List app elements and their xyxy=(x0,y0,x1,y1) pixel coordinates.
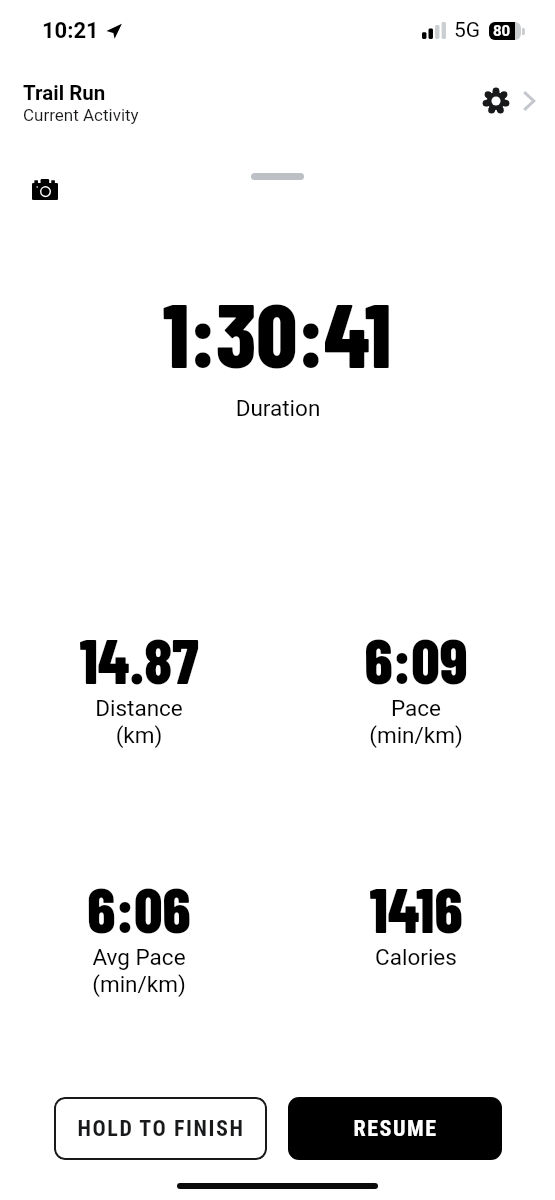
staticText: Trail Run xyxy=(23,81,106,105)
staticText: 6:06 xyxy=(0,870,399,945)
staticText: 1416 xyxy=(156,870,555,945)
button[interactable]: Settings xyxy=(474,79,518,123)
staticText: RESUME xyxy=(353,1116,438,1142)
staticText: Current Activity xyxy=(23,105,139,125)
staticText: 80 xyxy=(493,22,511,40)
staticText: Avg Pace xyxy=(0,944,399,970)
staticText: 6:09 xyxy=(156,621,555,696)
staticText: 14.87 xyxy=(0,621,399,696)
staticText: (min/km) xyxy=(156,722,555,748)
staticText: Distance xyxy=(0,695,399,721)
staticText: Duration xyxy=(18,395,538,421)
staticText: (km) xyxy=(0,722,399,748)
staticText: (min/km) xyxy=(0,971,399,997)
button[interactable]: HOLD TO FINISH xyxy=(54,1097,267,1160)
staticText: 1:30:41 xyxy=(17,278,537,386)
staticText: Calories xyxy=(156,944,555,970)
staticText: HOLD TO FINISH xyxy=(77,1116,245,1142)
button[interactable]: Camera xyxy=(24,172,66,207)
button[interactable]: RESUME xyxy=(288,1097,502,1160)
staticText: Pace xyxy=(156,695,555,721)
staticText: 5G xyxy=(454,18,481,43)
staticText: 10:21 xyxy=(42,18,99,44)
button[interactable]: Expand xyxy=(512,80,546,122)
